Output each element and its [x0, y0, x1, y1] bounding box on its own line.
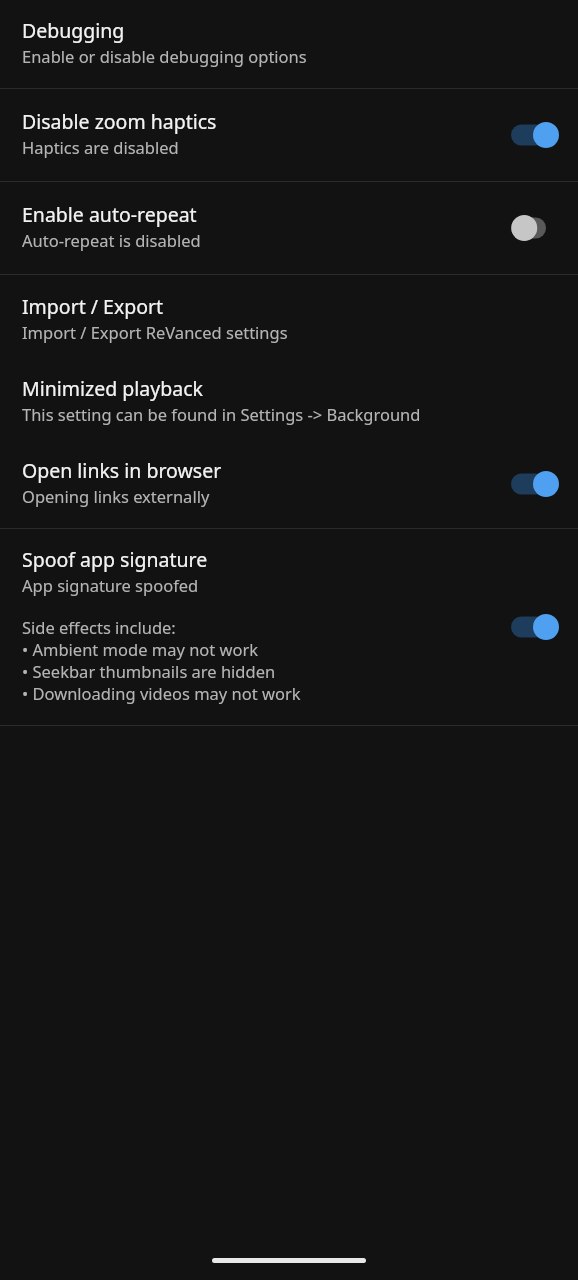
staticText: • Downloading videos may not work: [22, 683, 301, 705]
staticText: Import / Export ReVanced settings: [22, 322, 288, 344]
button[interactable]: Import / Export: [0, 275, 578, 358]
button[interactable]: Minimized playback: [0, 358, 578, 440]
button[interactable]: Disable zoom haptics: [0, 89, 578, 181]
staticText: Haptics are disabled: [22, 137, 179, 159]
staticText: • Seekbar thumbnails are hidden: [22, 661, 276, 683]
button[interactable]: Spoof app signature: [0, 529, 578, 725]
button[interactable]: Enable auto-repeat toggle: [506, 204, 568, 252]
staticText: Debugging: [22, 20, 125, 43]
staticText: Enable or disable debugging options: [22, 46, 307, 68]
staticText: Opening links externally: [22, 486, 210, 508]
staticText: • Ambient mode may not work: [22, 639, 259, 661]
staticText: Spoof app signature: [22, 549, 208, 572]
button[interactable]: Open links in browser toggle: [506, 460, 568, 508]
staticText: Auto-repeat is disabled: [22, 230, 201, 252]
button[interactable]: Debugging: [0, 0, 578, 88]
staticText: Disable zoom haptics: [22, 111, 217, 134]
button[interactable]: Spoof app signature toggle: [506, 603, 568, 651]
staticText: Enable auto-repeat: [22, 204, 197, 227]
staticText: Side effects include:: [22, 617, 176, 639]
button[interactable]: Open links in browser: [0, 440, 578, 528]
staticText: This setting can be found in Settings ->…: [22, 404, 421, 426]
staticText: App signature spoofed: [22, 575, 199, 597]
button[interactable]: Disable zoom haptics toggle: [506, 111, 568, 159]
button[interactable]: Enable auto-repeat: [0, 182, 578, 274]
staticText: Open links in browser: [22, 460, 222, 483]
staticText: Minimized playback: [22, 378, 203, 401]
staticText: Import / Export: [22, 296, 164, 319]
